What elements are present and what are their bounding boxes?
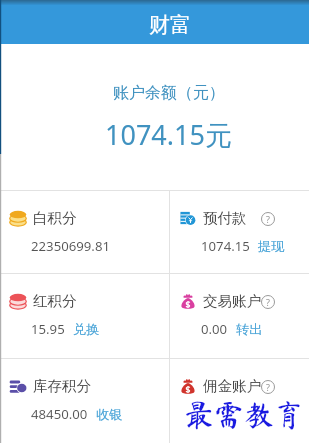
- staticText: 财富: [149, 12, 191, 38]
- button[interactable]: 提现: [258, 238, 285, 255]
- staticText: 账户余额（元）: [113, 83, 225, 103]
- staticText: 0.00: [201, 320, 228, 338]
- button[interactable]: Help: [261, 212, 275, 226]
- staticText: 最需教育: [184, 400, 304, 430]
- staticText: ?: [266, 213, 270, 225]
- staticText: ?: [266, 381, 270, 393]
- staticText: 22350699.81: [31, 237, 110, 255]
- button[interactable]: 转出: [236, 321, 263, 338]
- staticText: 收银: [96, 406, 123, 423]
- button[interactable]: 库存积分: [0, 359, 169, 443]
- button[interactable]: 收银: [96, 406, 123, 423]
- button[interactable]: 红积分: [0, 274, 169, 358]
- staticText: 白积分: [33, 209, 77, 227]
- button[interactable]: 兑换: [73, 321, 100, 338]
- button[interactable]: Help: [261, 380, 275, 394]
- staticText: 转出: [236, 321, 263, 338]
- staticText: 15.95: [31, 320, 65, 338]
- staticText: 红积分: [33, 292, 77, 310]
- button[interactable]: 交易账户: [170, 274, 309, 358]
- button[interactable]: 预付款: [170, 191, 309, 273]
- staticText: 佣金账户: [203, 377, 261, 395]
- button[interactable]: 佣金账户: [170, 359, 309, 443]
- staticText: 预付款: [203, 209, 247, 227]
- staticText: 交易账户: [203, 292, 261, 310]
- staticText: 48450.00: [31, 405, 88, 423]
- staticText: 1074.15: [201, 237, 250, 255]
- button[interactable]: 白积分: [0, 191, 169, 273]
- staticText: 1074.15元: [105, 116, 232, 153]
- staticText: 兑换: [73, 321, 100, 338]
- staticText: 库存积分: [33, 377, 91, 395]
- staticText: 提现: [258, 238, 285, 255]
- button[interactable]: Help: [261, 295, 275, 309]
- staticText: ?: [266, 296, 270, 308]
